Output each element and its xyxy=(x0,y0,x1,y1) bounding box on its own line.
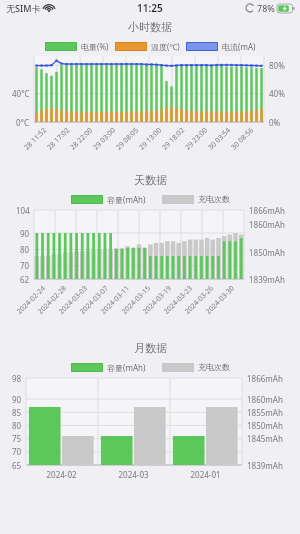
button[interactable]: 电流(mA) xyxy=(183,40,259,53)
staticText: 电流(mA) xyxy=(222,41,256,52)
staticText: 电量(%) xyxy=(81,41,109,52)
button[interactable]: 温度(℃) xyxy=(112,40,183,53)
staticText: 容量(mAh) xyxy=(107,362,146,373)
button[interactable]: 充电次数 xyxy=(159,361,233,373)
button[interactable]: 电量(%) xyxy=(42,40,112,53)
staticText: 容量(mAh) xyxy=(107,194,146,205)
staticText: 月数据 xyxy=(134,341,167,355)
staticText: 充电次数 xyxy=(198,194,230,204)
staticText: 11:25 xyxy=(137,1,163,15)
staticText: 温度(℃) xyxy=(151,41,180,52)
staticText: 无SIM卡 xyxy=(6,2,41,14)
staticText: 充电次数 xyxy=(198,362,230,372)
staticText: 小时数据 xyxy=(128,20,172,34)
button[interactable]: 容量(mAh) xyxy=(68,361,149,374)
button[interactable]: 充电次数 xyxy=(159,193,233,205)
staticText: 78% xyxy=(257,2,275,14)
button[interactable]: 容量(mAh) xyxy=(68,193,149,206)
staticText: 天数据 xyxy=(134,173,167,187)
